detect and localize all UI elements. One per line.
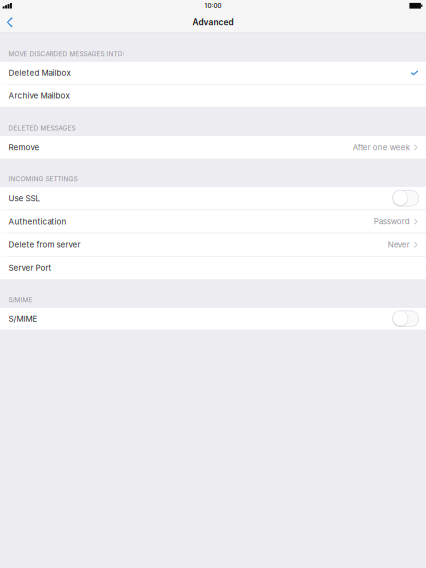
button[interactable]: Server Port [0,257,426,279]
staticText: After one week [353,143,410,152]
button[interactable]: Authentication [0,210,426,233]
staticText: Password [374,217,410,226]
staticText: S/MIME [8,314,37,324]
button[interactable]: Back [0,12,22,32]
button[interactable]: Remove [0,136,426,159]
staticText: S/MIME [8,296,32,304]
staticText: Authentication [8,217,66,226]
button[interactable]: Archive Mailbox [0,85,426,107]
button[interactable]: Use SSL [0,187,426,209]
staticText: Advanced [192,17,233,27]
staticText: INCOMING SETTINGS [8,175,77,183]
staticText: Never [388,240,410,249]
button[interactable]: Delete from server [0,233,426,256]
button[interactable]: S/MIME [0,308,426,330]
staticText: DELETED MESSAGES [8,124,75,132]
staticText: 10:00 [204,2,221,9]
button[interactable]: Deleted Mailbox [0,62,426,84]
staticText: Remove [8,143,39,152]
staticText: Use SSL [8,193,40,203]
staticText: Delete from server [8,240,80,249]
staticText: Deleted Mailbox [8,68,70,78]
staticText: Server Port [8,263,51,273]
staticText: Archive Mailbox [8,91,69,100]
staticText: MOVE DISCARDED MESSAGES INTO: [8,50,124,58]
